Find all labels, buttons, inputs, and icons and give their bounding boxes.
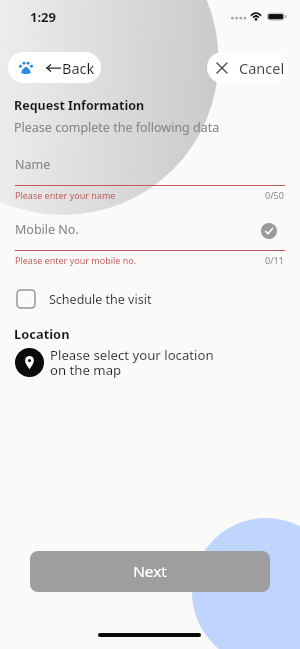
staticText: 1:29: [30, 8, 56, 26]
staticText: 0/11: [265, 254, 284, 266]
button[interactable]: Please select your location on the map: [15, 345, 225, 379]
staticText: Cancel: [239, 58, 285, 78]
button[interactable]: Cancel: [207, 52, 287, 83]
button[interactable]: Schedule the visit: [15, 286, 165, 312]
staticText: Please enter your name: [15, 189, 116, 201]
staticText: Please select your location on the map: [50, 346, 222, 379]
staticText: Next: [133, 561, 167, 582]
button[interactable]: Back: [8, 52, 101, 83]
staticText: Mobile No.: [15, 221, 79, 238]
staticText: Location: [14, 325, 70, 343]
button[interactable]: Mobile No.: [15, 217, 285, 251]
staticText: Name: [15, 156, 51, 173]
staticText: Back: [62, 58, 95, 78]
staticText: 0/50: [265, 189, 284, 201]
button[interactable]: Next: [30, 551, 270, 592]
staticText: Please enter your mobile no.: [15, 254, 137, 266]
staticText: Please complete the following data: [14, 119, 220, 136]
button[interactable]: Name: [15, 152, 285, 186]
staticText: Request Information: [14, 97, 145, 114]
staticText: Schedule the visit: [49, 291, 152, 308]
